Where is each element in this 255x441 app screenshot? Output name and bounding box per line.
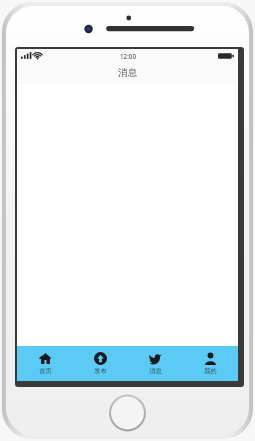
button[interactable]: 发布	[73, 346, 128, 381]
button[interactable]: 消息	[128, 346, 183, 381]
button[interactable]: 首页	[17, 346, 73, 381]
staticText: 我的	[204, 367, 217, 375]
staticText: 消息	[149, 367, 162, 375]
staticText: 首页	[39, 367, 52, 375]
staticText: 发布	[94, 367, 107, 375]
button[interactable]: 我的	[183, 346, 238, 381]
staticText: 消息	[118, 67, 137, 79]
staticText: 12:00	[120, 52, 136, 60]
